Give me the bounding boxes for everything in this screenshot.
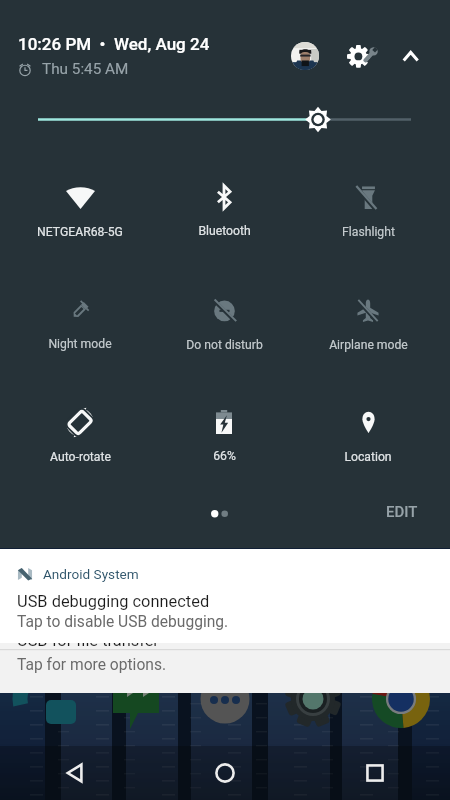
button[interactable]: EDIT: [378, 496, 426, 528]
staticText: Flashlight: [342, 225, 395, 239]
button[interactable]: Auto-rotate: [8, 395, 152, 475]
button[interactable]: Android System: [0, 549, 450, 643]
staticText: Thu 5:45 AM: [42, 60, 129, 78]
button[interactable]: USB for file transfer: [0, 643, 450, 693]
button[interactable]: Settings: [334, 38, 384, 74]
staticText: Location: [344, 450, 392, 464]
staticText: 66%: [213, 449, 236, 463]
button[interactable]: Night mode: [8, 283, 152, 363]
button[interactable]: Bluetooth: [152, 170, 296, 250]
staticText: USB debugging connected: [17, 592, 210, 611]
staticText: Android System: [43, 566, 139, 582]
button[interactable]: Back: [0, 746, 150, 800]
staticText: 10:26 PM • Wed, Aug 24: [18, 34, 210, 54]
staticText: Bluetooth: [198, 224, 251, 238]
staticText: Airplane mode: [329, 338, 408, 352]
button[interactable]: Airplane mode: [296, 283, 440, 363]
staticText: EDIT: [386, 503, 418, 521]
staticText: NETGEAR68-5G: [37, 225, 123, 239]
staticText: Night mode: [48, 337, 112, 351]
button[interactable]: Do not disturb: [152, 283, 296, 363]
button[interactable]: Recent apps: [300, 746, 450, 800]
button[interactable]: Brightness: [0, 100, 450, 140]
staticText: Tap for more options.: [17, 656, 167, 674]
staticText: USB for file transfer: [17, 631, 159, 650]
staticText: Do not disturb: [186, 338, 263, 352]
staticText: Auto-rotate: [50, 450, 111, 464]
button[interactable]: Flashlight: [296, 170, 440, 250]
staticText: Tap to disable USB debugging.: [17, 613, 229, 631]
button[interactable]: User profile: [291, 42, 319, 70]
button[interactable]: 66%: [152, 395, 296, 475]
button[interactable]: Collapse: [394, 40, 428, 74]
button[interactable]: Location: [296, 395, 440, 475]
button[interactable]: NETGEAR68-5G: [8, 170, 152, 250]
button[interactable]: Home: [150, 746, 300, 800]
